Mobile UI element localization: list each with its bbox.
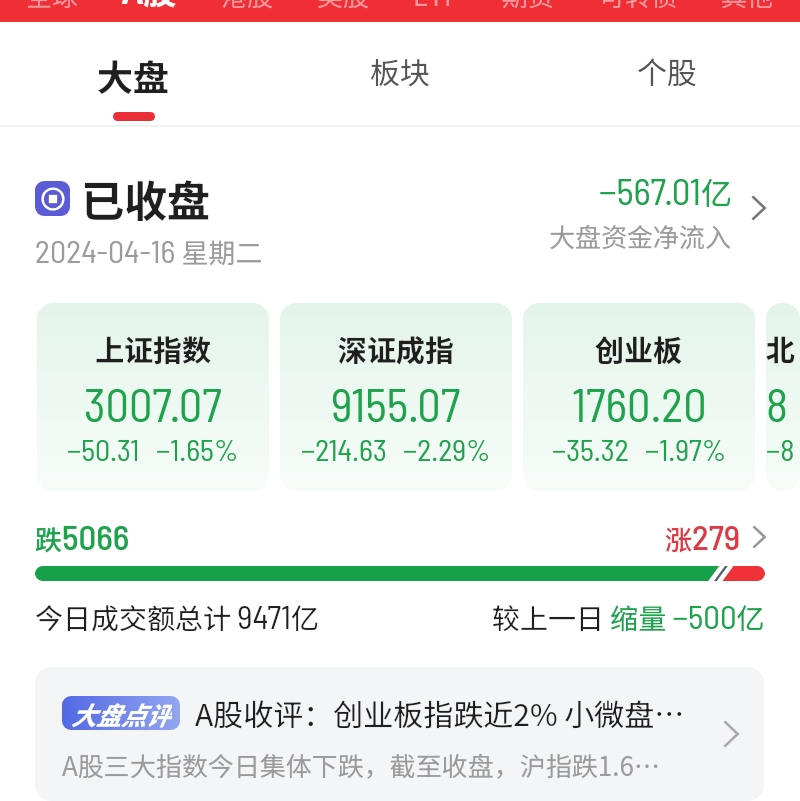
- other: 大盘资金净流入详情: [752, 196, 766, 220]
- staticText: 全球: [26, 0, 79, 14]
- staticText: 1760.20: [572, 375, 707, 431]
- button[interactable]: 北证50: [766, 303, 800, 491]
- staticText: 今日成交额总计 9471亿: [35, 596, 319, 637]
- button[interactable]: 板块: [266, 22, 533, 125]
- staticText: −2.29%: [403, 431, 491, 467]
- button[interactable]: 深证成指: [280, 303, 512, 491]
- staticText: 2024-04-16 星期二: [35, 231, 263, 271]
- staticText: 可转债: [599, 0, 678, 14]
- staticText: 板块: [370, 49, 430, 92]
- button[interactable]: 大盘点评: [35, 667, 764, 801]
- staticText: 已收盘: [81, 167, 210, 229]
- staticText: ETF: [413, 0, 459, 14]
- button[interactable]: 创业板: [523, 303, 755, 491]
- staticText: 大盘: [97, 49, 170, 101]
- staticText: 跌5066: [35, 515, 130, 558]
- staticText: 港股: [221, 0, 274, 14]
- button[interactable]: 个股: [533, 22, 800, 125]
- other: 查看资讯详情: [724, 721, 739, 747]
- button[interactable]: 跌5066: [35, 515, 766, 558]
- staticText: 其他: [721, 0, 774, 14]
- staticText: A股收评：创业板指跌近2% 小微盘…: [195, 691, 685, 734]
- staticText: −8.20: [766, 431, 800, 467]
- staticText: −50.31: [67, 431, 140, 467]
- staticText: 较上一日 缩量 −500亿: [492, 596, 765, 637]
- staticText: 美股: [317, 0, 370, 14]
- staticText: −1.97%: [645, 431, 727, 467]
- button[interactable]: 大盘: [0, 22, 266, 125]
- staticText: −1.65%: [156, 431, 239, 467]
- staticText: −35.32: [552, 431, 629, 467]
- staticText: 大盘资金净流入: [549, 217, 732, 255]
- staticText: 3007.07: [84, 375, 222, 431]
- staticText: 涨279: [665, 515, 741, 558]
- staticText: 上证指数: [95, 327, 212, 369]
- other: 涨跌家数详情: [753, 526, 766, 548]
- staticText: 857.10: [766, 375, 800, 431]
- staticText: −214.63: [301, 431, 387, 467]
- button[interactable]: 全球: [0, 0, 800, 22]
- staticText: A股三大指数今日集体下跌，截至收盘，沪指跌1.6…: [62, 746, 660, 784]
- staticText: −567.01亿: [599, 168, 732, 214]
- button[interactable]: 已收盘: [35, 167, 766, 271]
- staticText: 个股: [637, 49, 697, 92]
- staticText: 大盘点评: [71, 696, 172, 730]
- staticText: 创业板: [595, 327, 683, 369]
- staticText: 深证成指: [338, 327, 455, 369]
- staticText: 北证50: [766, 327, 800, 369]
- staticText: A股: [122, 0, 177, 14]
- button[interactable]: 上证指数: [37, 303, 269, 491]
- staticText: 期货: [502, 0, 555, 14]
- staticText: 9155.07: [331, 375, 461, 431]
